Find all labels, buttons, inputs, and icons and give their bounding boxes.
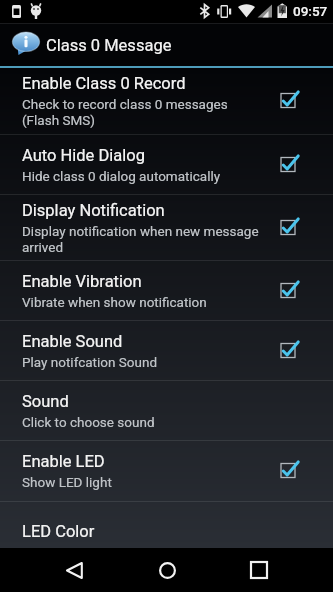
- staticText: 09:57: [293, 3, 328, 19]
- staticText: Vibrate when show notification: [22, 294, 207, 310]
- button[interactable]: Enable Vibration: [0, 261, 333, 321]
- staticText: Enable Sound: [22, 332, 123, 351]
- button[interactable]: Sound: [0, 381, 333, 441]
- button[interactable]: Home: [143, 548, 191, 592]
- staticText: Enable LED: [22, 452, 105, 471]
- staticText: Class 0 Message: [46, 36, 172, 55]
- button[interactable]: LED Color: [0, 502, 333, 548]
- button[interactable]: Enable LED: [0, 441, 333, 502]
- staticText: Display notification when new message ar…: [22, 223, 259, 255]
- staticText: Display Notification: [22, 201, 165, 220]
- button[interactable]: Enable Class 0 Record: [0, 68, 333, 135]
- staticText: Check to record class 0 messages (Flash …: [22, 96, 228, 128]
- staticText: Play notifcation Sound: [22, 354, 158, 370]
- button[interactable]: Display Notification: [0, 195, 333, 261]
- staticText: Sound: [22, 392, 69, 411]
- button[interactable]: Back: [50, 548, 98, 592]
- staticText: Auto Hide Dialog: [22, 146, 145, 165]
- button[interactable]: Enable Sound: [0, 321, 333, 381]
- button[interactable]: Recents: [235, 548, 283, 592]
- staticText: Hide class 0 dialog automatically: [22, 168, 221, 184]
- staticText: Enable Vibration: [22, 272, 142, 291]
- button[interactable]: Class 0 Message: [0, 24, 333, 66]
- button[interactable]: Auto Hide Dialog: [0, 135, 333, 195]
- staticText: Click to choose sound: [22, 414, 155, 430]
- staticText: Show LED light: [22, 474, 112, 490]
- staticText: LED Color: [22, 522, 95, 541]
- staticText: Enable Class 0 Record: [22, 74, 186, 93]
